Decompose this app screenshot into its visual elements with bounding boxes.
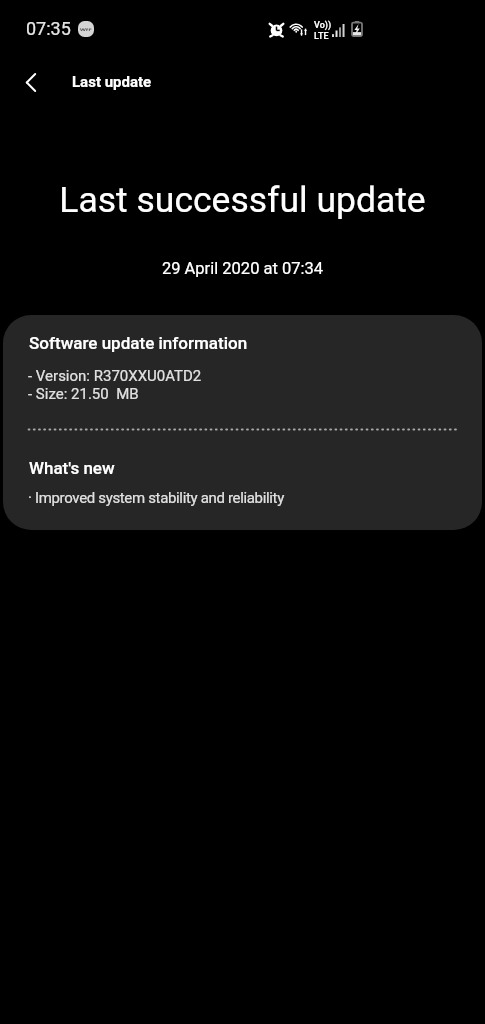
staticText: - Size: 21.50 MB (28, 385, 139, 403)
staticText: Software update information (29, 333, 248, 353)
staticText: LTE (314, 31, 329, 42)
staticText: 07:35 (26, 18, 71, 39)
staticText: Last update (72, 73, 152, 91)
staticText: - Version: R370XXU0ATD2 (28, 367, 202, 385)
staticText: 29 April 2020 at 07:34 (0, 259, 485, 278)
staticText: What's new (29, 458, 115, 478)
staticText: · Improved system stability and reliabil… (28, 489, 284, 507)
staticText: Last successful update (0, 179, 485, 221)
button[interactable]: Software update information (3, 315, 482, 530)
staticText: Vo)) (314, 20, 332, 31)
button[interactable]: Navigate up (9, 60, 53, 104)
